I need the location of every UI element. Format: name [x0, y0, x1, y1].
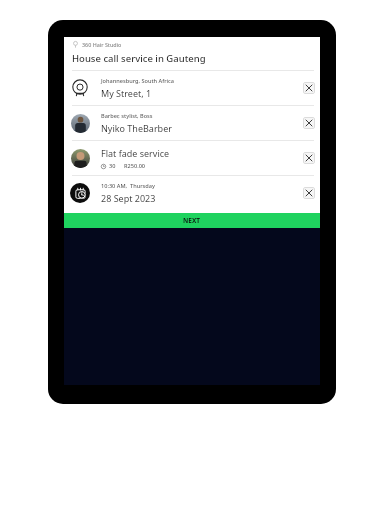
- staticText: House call service in Gauteng: [72, 52, 206, 65]
- button[interactable]: NEXT: [64, 213, 320, 228]
- staticText: My Street, 1: [101, 87, 152, 99]
- staticText: R250.00: [124, 162, 146, 170]
- staticText: 360 Hair Studio: [82, 41, 122, 48]
- button[interactable]: Remove Service: [303, 152, 315, 164]
- staticText: Flat fade service: [101, 147, 170, 159]
- staticText: Nyiko TheBarber: [101, 122, 172, 134]
- staticText: 10:30 AM, Thursday: [101, 182, 155, 190]
- staticText: NEXT: [183, 216, 201, 225]
- button[interactable]: Flat fade service: [64, 141, 320, 175]
- staticText: Johannesburg, South Africa: [101, 77, 175, 85]
- staticText: Barber, stylist, Boss: [101, 112, 153, 120]
- button[interactable]: 10:30 AM, Thursday: [64, 176, 320, 210]
- staticText: 28 Sept 2023: [101, 192, 156, 204]
- button[interactable]: Remove Location: [303, 82, 315, 94]
- button[interactable]: Barber, stylist, Boss: [64, 106, 320, 140]
- button[interactable]: Remove Barber: [303, 117, 315, 129]
- button[interactable]: Johannesburg, South Africa: [64, 71, 320, 105]
- staticText: 30: [109, 162, 116, 170]
- button[interactable]: Remove Date and time: [303, 187, 315, 199]
